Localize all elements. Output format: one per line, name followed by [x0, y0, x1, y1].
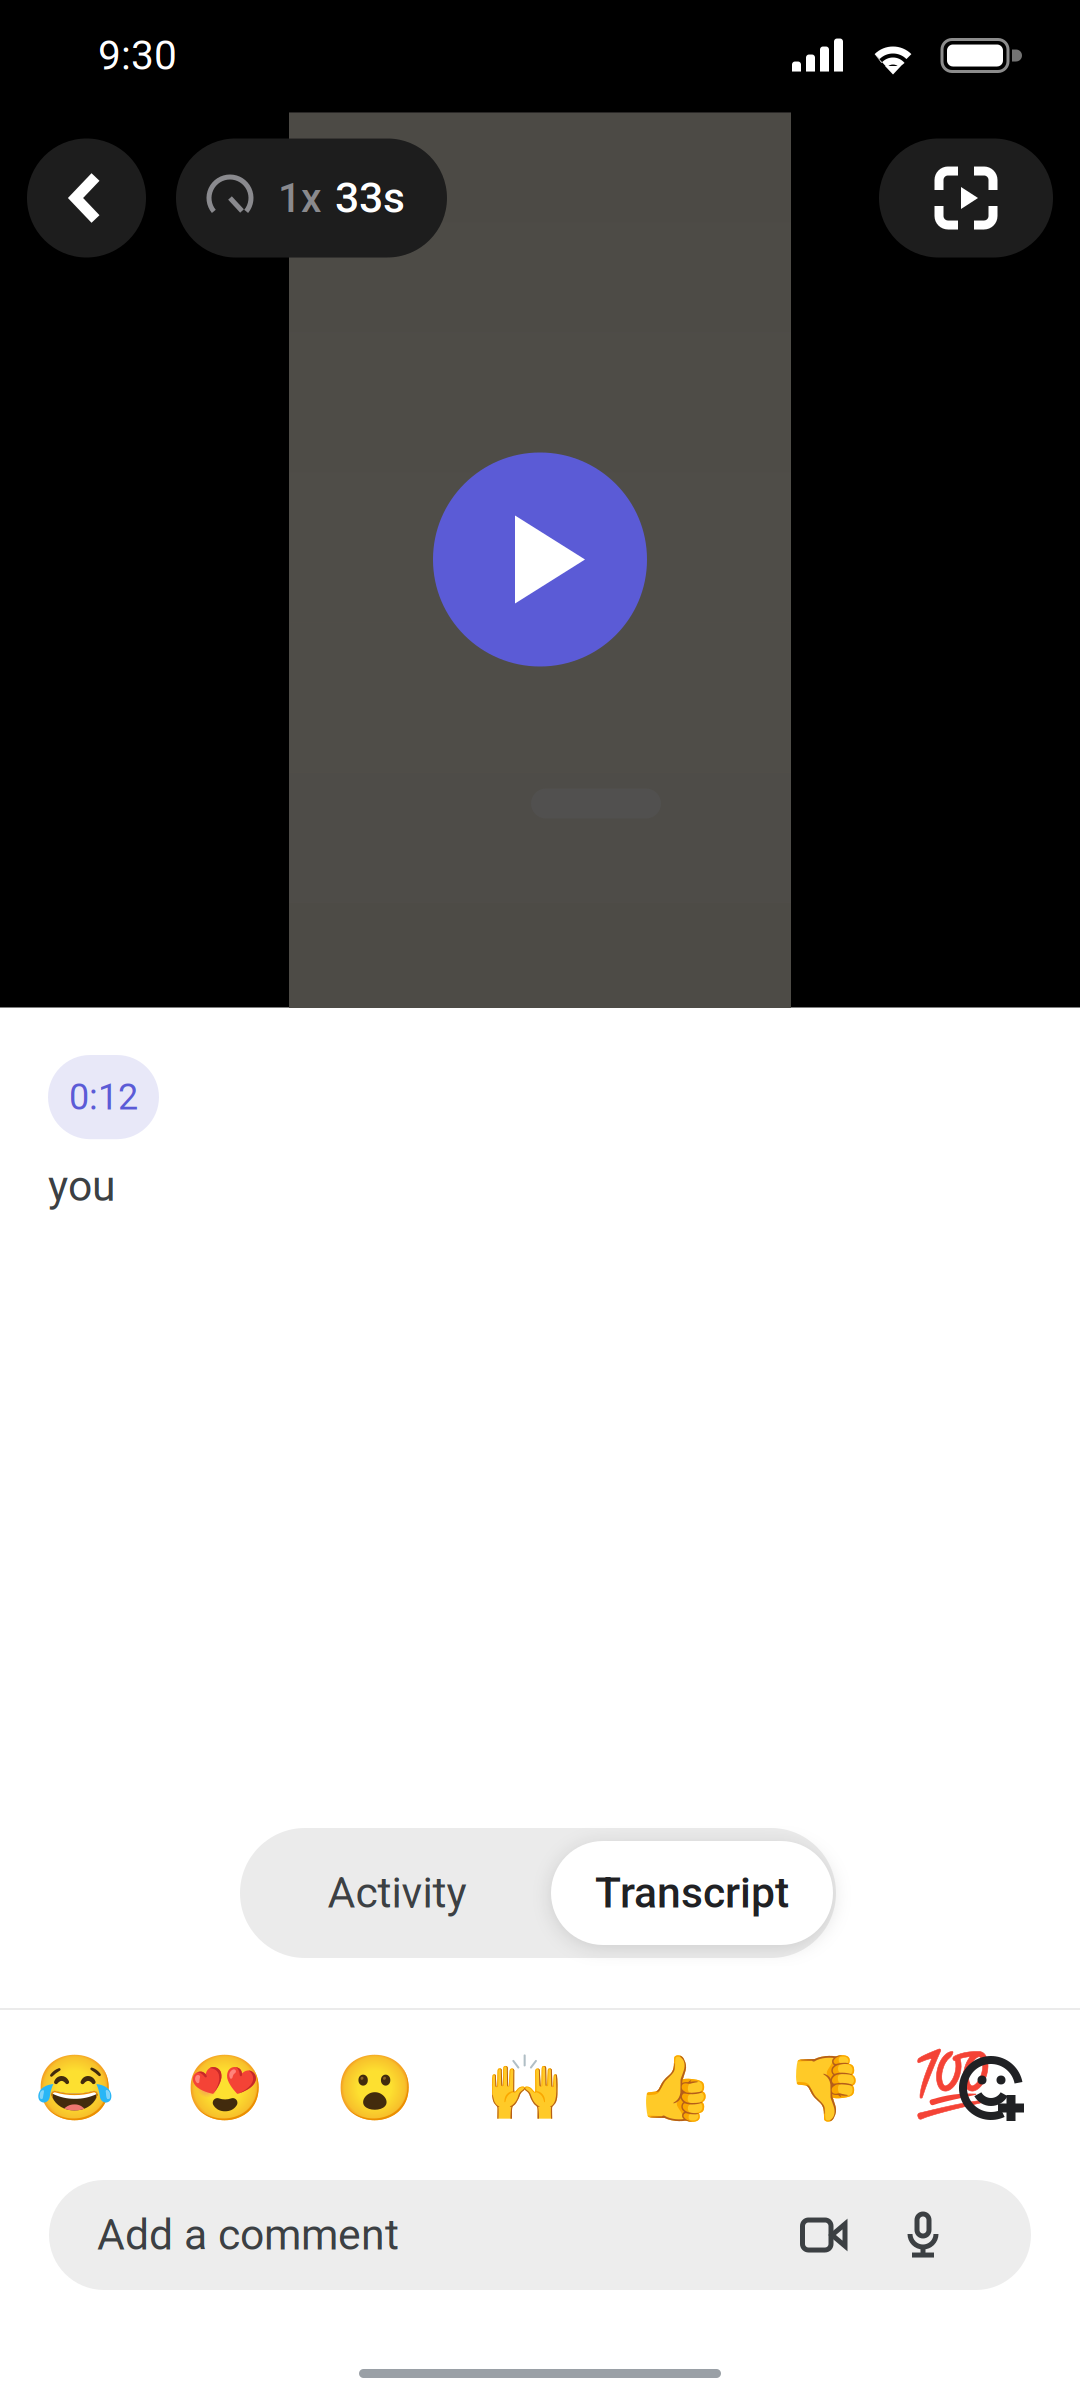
- staticText: Add a comment: [97, 2210, 399, 2260]
- staticText: 😍: [185, 2051, 265, 2124]
- button[interactable]: 😮: [300, 2023, 450, 2153]
- staticText: 33s: [335, 173, 405, 223]
- button[interactable]: More reactions: [900, 2023, 1050, 2153]
- button[interactable]: 👍: [600, 2023, 750, 2153]
- staticText: 😂: [35, 2051, 115, 2124]
- button[interactable]: Expand video: [879, 138, 1053, 257]
- staticText: 👍: [635, 2051, 715, 2124]
- staticText: you: [48, 1161, 116, 1211]
- button[interactable]: 👎: [750, 2023, 900, 2153]
- button[interactable]: Play video: [433, 452, 647, 666]
- button[interactable]: 1x: [176, 138, 447, 257]
- staticText: 0:12: [69, 1076, 138, 1118]
- staticText: 👎: [785, 2051, 865, 2124]
- button[interactable]: Activity: [243, 1834, 551, 1952]
- button[interactable]: Transcript: [551, 1841, 833, 1945]
- staticText: 😮: [335, 2051, 415, 2124]
- staticText: 9:30: [98, 32, 177, 79]
- button[interactable]: 😂: [0, 2023, 150, 2153]
- button[interactable]: 🙌: [450, 2023, 600, 2153]
- staticText: Activity: [327, 1868, 466, 1918]
- button[interactable]: Add a comment: [49, 2180, 1031, 2290]
- staticText: 1x: [278, 174, 321, 222]
- staticText: 💯: [913, 2047, 993, 2120]
- staticText: 🙌: [485, 2051, 565, 2124]
- staticText: Transcript: [595, 1868, 789, 1918]
- button[interactable]: Back: [27, 138, 146, 257]
- button[interactable]: 😍: [150, 2023, 300, 2153]
